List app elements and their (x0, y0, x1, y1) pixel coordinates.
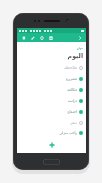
staticText: اجتماع (67, 110, 77, 114)
button[interactable]: Mark incomplete (79, 77, 83, 81)
button[interactable]: سفر (20, 117, 83, 128)
button[interactable]: Mark incomplete (79, 131, 83, 135)
button[interactable]: More options (76, 34, 83, 41)
button[interactable]: Mark complete (79, 66, 83, 70)
staticText: سفر (70, 121, 77, 125)
staticText: ملاحظة (63, 65, 77, 70)
button[interactable]: مشروع (20, 73, 83, 84)
button[interactable]: Edit (29, 34, 36, 41)
button[interactable]: Mark incomplete (79, 99, 83, 103)
button[interactable]: ملاحظة (20, 62, 83, 73)
button[interactable]: واجب منزلي (20, 128, 83, 137)
button[interactable]: Delete (47, 34, 54, 41)
button[interactable]: Mark incomplete (79, 88, 83, 92)
button[interactable]: اجتماع (20, 106, 83, 117)
button[interactable]: Menu (20, 34, 27, 41)
staticText: واجب منزلي (59, 130, 77, 135)
staticText: مهام (76, 46, 83, 50)
staticText: مكالمة (66, 88, 77, 92)
other: Home button (43, 159, 60, 165)
button[interactable]: Mark complete (79, 121, 83, 125)
button[interactable]: دراسة (20, 95, 83, 106)
staticText: دراسة (67, 99, 77, 103)
button[interactable]: Copy (38, 34, 45, 41)
staticText: اليوم (67, 52, 83, 59)
button[interactable]: Add task (47, 140, 57, 150)
staticText: مشروع (66, 77, 77, 81)
button[interactable]: Mark incomplete (79, 110, 83, 114)
button[interactable]: مكالمة (20, 84, 83, 95)
